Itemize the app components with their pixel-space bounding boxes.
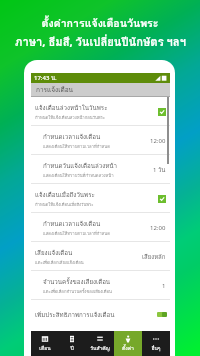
button[interactable]: จำนวนครั้งของเสียงเตือน: [31, 271, 170, 300]
button[interactable]: ปี: [58, 331, 86, 356]
staticText: 1 วัน: [153, 165, 166, 175]
staticText: เดือน: [39, 344, 51, 352]
button[interactable]: อื่นๆ: [142, 331, 170, 356]
staticText: แสดงเตือนให้ทราบวันที่กำหนดล่วงหน้า: [43, 172, 114, 179]
staticText: ตั้งค่าการแจ้งเตือนวันพระ: [41, 15, 159, 32]
staticText: การแจ้งเตือน: [36, 85, 74, 95]
staticText: เสียงแจ้งเตือน: [35, 248, 73, 258]
staticText: 12:00: [150, 224, 166, 232]
staticText: 17:43 น.: [34, 73, 57, 83]
staticText: แตะเพื่อเลือกเสียงแจ้งเตือน: [35, 259, 84, 266]
staticText: กำหนดให้แจ้งเตือนล่วงหน้าก่อนวันพระ: [35, 114, 106, 121]
staticText: กำหนดให้แจ้งเตือนเมื่อถึงวันพระ: [35, 201, 94, 208]
staticText: กำหนดเวลาแจ้งเตือน: [43, 219, 101, 229]
staticText: กำหนดเวลาแจ้งเตือน: [43, 132, 101, 142]
staticText: แจ้งเตือนล่วงหน้าในวันพระ: [35, 103, 108, 113]
button[interactable]: แจ้งเตือนล่วงหน้าในวันพระ: [31, 97, 170, 126]
staticText: จำนวนครั้งของเสียงเตือน: [43, 277, 111, 287]
staticText: ปี: [70, 344, 74, 352]
button[interactable]: กำหนดวันแจ้งเตือนล่วงหน้า: [31, 155, 170, 184]
staticText: 12:00: [150, 137, 166, 145]
button[interactable]: ตั้งค่า: [114, 331, 142, 356]
button[interactable]: กำหนดเวลาแจ้งเตือน: [31, 213, 170, 242]
button[interactable]: เพิ่มประสิทธิภาพการแจ้งเตือน: [31, 300, 170, 329]
button[interactable]: เดือน: [31, 331, 58, 356]
staticText: 1: [162, 282, 166, 290]
staticText: แจ้งเตือนเมื่อถึงวันพระ: [35, 190, 95, 200]
staticText: กำหนดวันแจ้งเตือนล่วงหน้า: [43, 161, 118, 171]
button[interactable]: เสียงแจ้งเตือน: [31, 242, 170, 271]
staticText: อื่นๆ: [151, 344, 161, 352]
staticText: แสดงเตือนให้ทราบตามเวลาที่กำหนด: [43, 230, 110, 237]
button[interactable]: กำหนดเวลาแจ้งเตือน: [31, 126, 170, 155]
staticText: แตะเพื่อเลือกจำนวนครั้งของเสียงเตือน: [43, 288, 112, 295]
staticText: ภาษา, ธีมสี, วันเปลี่ยนปีนักษัตร ฯลฯ: [15, 33, 186, 51]
staticText: เสียงหลัก: [142, 252, 166, 262]
staticText: แสดงเตือนให้ทราบตามเวลาที่กำหนด: [43, 143, 110, 150]
button[interactable]: วันสำคัญ: [86, 331, 114, 356]
staticText: วันสำคัญ: [90, 344, 110, 352]
button[interactable]: แจ้งเตือนเมื่อถึงวันพระ: [31, 184, 170, 213]
staticText: เพิ่มประสิทธิภาพการแจ้งเตือน: [35, 310, 115, 320]
staticText: ตั้งค่า: [122, 344, 134, 352]
